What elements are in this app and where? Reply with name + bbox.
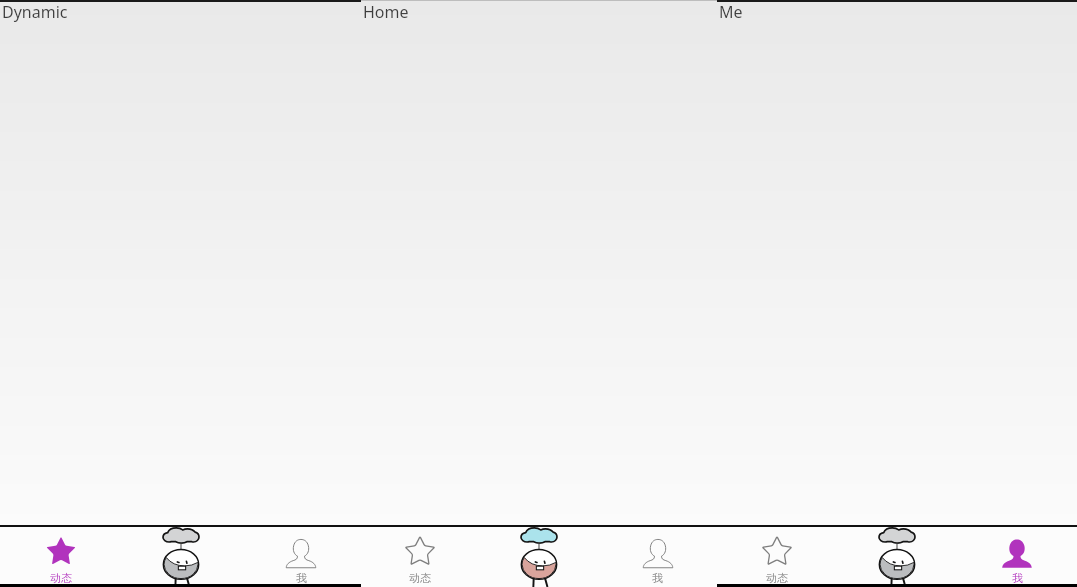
button[interactable]: 动态 (361, 525, 479, 587)
staticText: Dynamic (2, 1, 68, 23)
button[interactable]: Home (479, 525, 598, 587)
button[interactable]: 动态 (0, 525, 121, 587)
button[interactable]: 我 (598, 525, 717, 587)
staticText: Me (719, 1, 743, 23)
button[interactable]: 我 (957, 525, 1077, 587)
staticText: 动态 (409, 571, 431, 585)
staticText: 我 (1012, 571, 1023, 585)
staticText: 我 (652, 571, 663, 585)
button[interactable]: Home (837, 525, 957, 587)
staticText: 动态 (766, 571, 788, 585)
staticText: 我 (296, 571, 307, 585)
button[interactable]: 动态 (717, 525, 837, 587)
staticText: Home (363, 1, 409, 23)
button[interactable]: 我 (241, 525, 361, 587)
button[interactable]: Home (121, 525, 241, 587)
staticText: 动态 (50, 571, 72, 585)
